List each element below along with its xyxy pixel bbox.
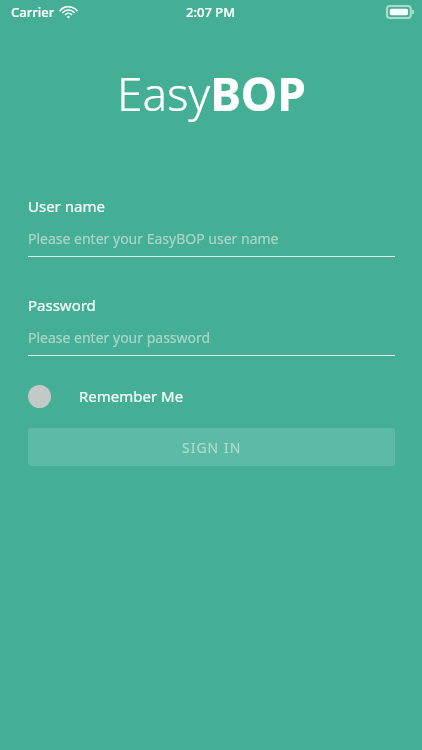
- button[interactable]: SIGN IN: [28, 428, 395, 466]
- staticText: EasyBOP: [117, 62, 306, 124]
- staticText: Please enter your password: [28, 328, 211, 347]
- staticText: Please enter your EasyBOP user name: [28, 229, 279, 248]
- button[interactable]: Remember Me: [28, 378, 395, 414]
- staticText: SIGN IN: [182, 438, 242, 457]
- button[interactable]: Password: [28, 295, 395, 356]
- button[interactable]: User name: [28, 196, 395, 257]
- staticText: User name: [28, 196, 105, 216]
- staticText: 2:07 PM: [186, 3, 236, 21]
- staticText: Carrier: [11, 3, 55, 21]
- staticText: Password: [28, 295, 96, 315]
- staticText: Remember Me: [79, 386, 184, 406]
